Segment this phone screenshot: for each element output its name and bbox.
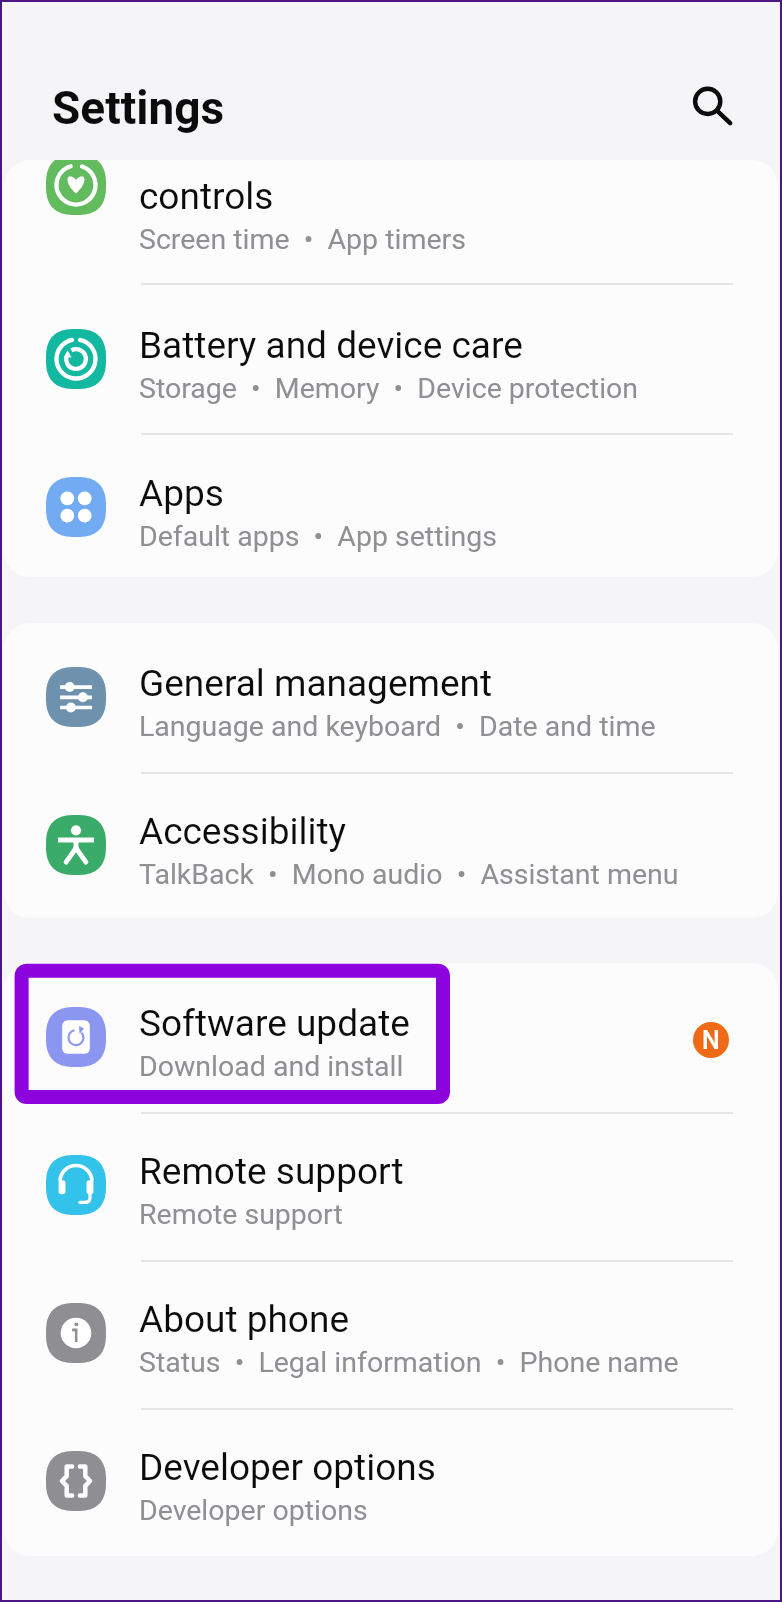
staticText: TalkBack • Mono audio • Assistant menu xyxy=(139,858,679,891)
staticText: Software update xyxy=(139,1002,410,1045)
staticText: Screen time • App timers xyxy=(139,223,466,256)
staticText: Battery and device care xyxy=(139,324,523,367)
staticText: About phone xyxy=(139,1298,350,1341)
staticText: Settings xyxy=(52,81,225,135)
staticText: Language and keyboard • Date and time xyxy=(139,710,656,743)
staticText: Status • Legal information • Phone name xyxy=(139,1346,679,1379)
button[interactable] xyxy=(4,626,778,774)
button[interactable] xyxy=(4,288,778,436)
staticText: Storage • Memory • Device protection xyxy=(139,372,639,405)
staticText: Apps xyxy=(139,472,224,515)
staticText: Developer options xyxy=(139,1446,436,1489)
staticText: Developer options xyxy=(139,1494,368,1527)
staticText: Default apps • App settings xyxy=(139,520,497,553)
staticText: controls xyxy=(139,175,274,218)
button[interactable] xyxy=(4,1410,778,1556)
staticText: Remote support xyxy=(139,1150,404,1193)
button[interactable] xyxy=(4,1262,778,1410)
button[interactable] xyxy=(4,436,778,577)
button[interactable] xyxy=(4,966,778,1114)
button[interactable] xyxy=(4,774,778,918)
button[interactable] xyxy=(4,160,778,283)
staticText: Accessibility xyxy=(139,810,347,853)
staticText: Remote support xyxy=(139,1198,343,1231)
button[interactable] xyxy=(4,1114,778,1262)
staticText: General management xyxy=(139,662,493,705)
button[interactable]: Search xyxy=(662,56,754,148)
staticText: N xyxy=(702,1026,720,1055)
staticText: Download and install xyxy=(139,1050,404,1083)
